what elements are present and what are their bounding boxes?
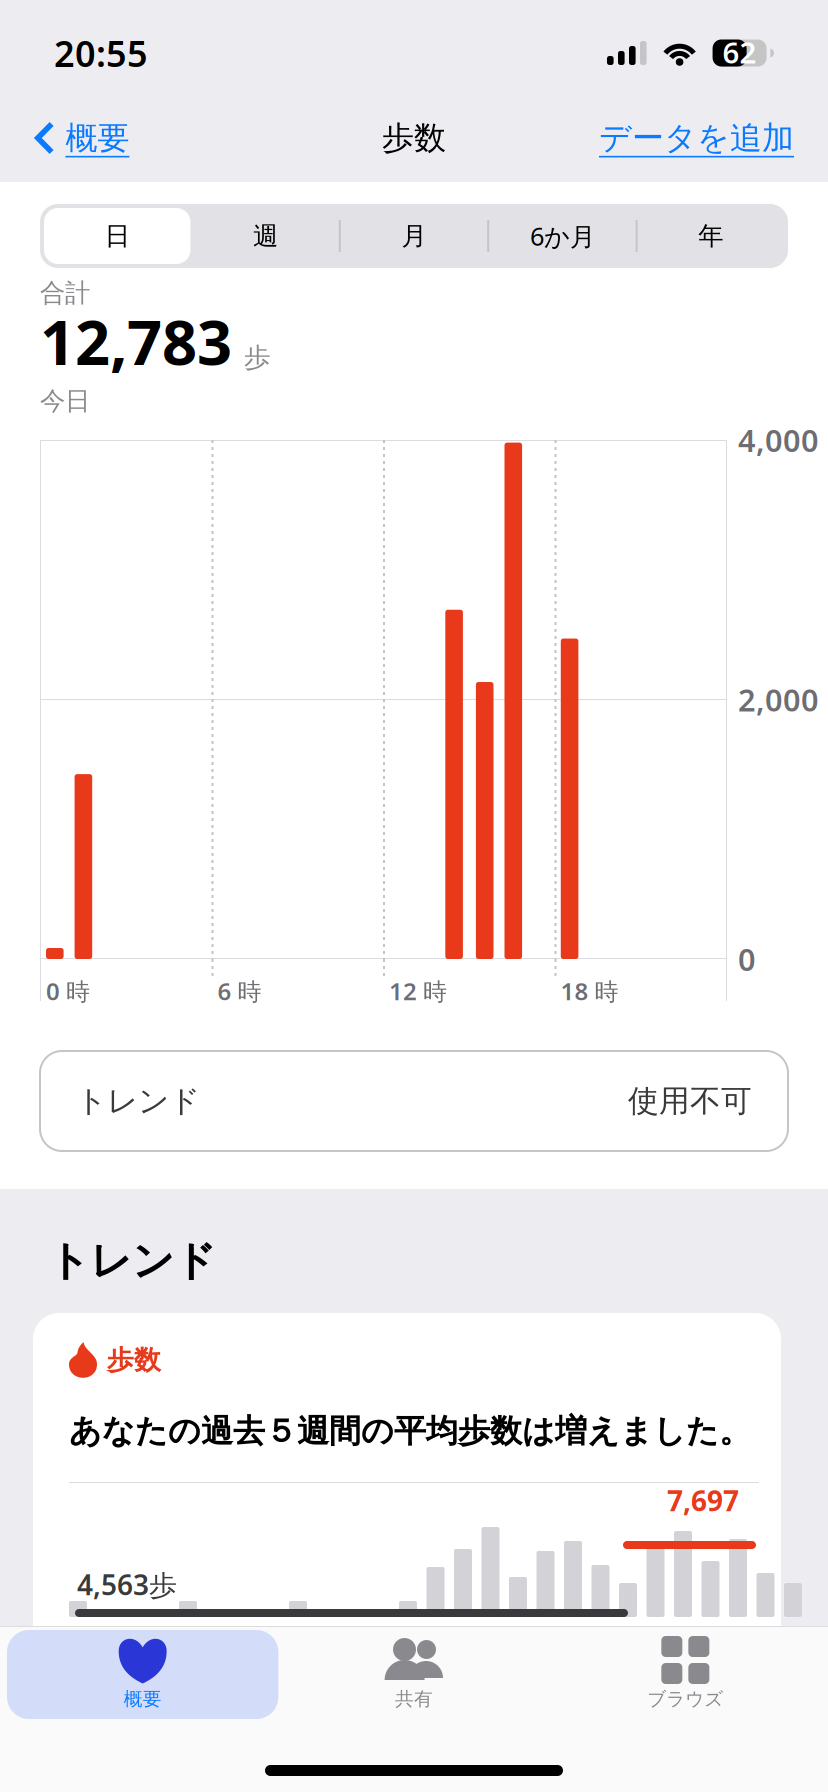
button[interactable]: ブラウズ <box>550 1630 821 1719</box>
staticText: 歩数 <box>382 118 446 158</box>
button[interactable]: 概要 <box>7 1630 278 1719</box>
staticText: 歩 <box>244 341 271 374</box>
staticText: 月 <box>401 220 426 251</box>
button[interactable]: 週 <box>192 208 339 264</box>
staticText: 20:55 <box>54 29 148 77</box>
staticText: 合計 <box>40 277 90 308</box>
button[interactable]: トレンド <box>0 1001 828 1151</box>
staticText: 18 時 <box>560 975 618 1007</box>
button[interactable]: 共有 <box>278 1630 550 1719</box>
staticText: 週 <box>253 220 278 251</box>
staticText: 12 時 <box>389 975 447 1007</box>
button[interactable]: 月 <box>341 208 487 264</box>
staticText: 使用不可 <box>628 1082 752 1120</box>
staticText: あなたの過去５週間の平均歩数は増えました。 <box>69 1411 751 1451</box>
staticText: 日 <box>105 220 130 251</box>
staticText: 共有 <box>395 1687 433 1710</box>
staticText: 概要 <box>124 1687 162 1710</box>
staticText: データを追加 <box>599 118 794 158</box>
staticText: 歩数 <box>107 1344 161 1376</box>
staticText: 12,783 <box>40 301 232 382</box>
staticText: 今日 <box>40 385 90 416</box>
staticText: 62 <box>723 32 757 71</box>
button[interactable]: データを追加 <box>583 100 810 176</box>
staticText: 概要 <box>65 118 129 158</box>
staticText: ブラウズ <box>647 1687 723 1710</box>
staticText: 7,697 <box>667 1482 739 1519</box>
button[interactable]: 6か月 <box>489 208 636 264</box>
staticText: トレンド <box>76 1082 200 1120</box>
staticText: 0 <box>738 939 756 979</box>
staticText: トレンド <box>48 1236 216 1286</box>
staticText: 4,000 <box>738 420 819 460</box>
button[interactable]: 概要 <box>18 100 145 176</box>
button[interactable]: 年 <box>638 208 784 264</box>
staticText: 2,000 <box>738 679 819 720</box>
staticText: 6か月 <box>530 219 595 253</box>
button[interactable]: 日 <box>44 208 190 264</box>
staticText: 4,563歩 <box>77 1566 177 1603</box>
staticText: 6 時 <box>217 975 261 1007</box>
staticText: 年 <box>698 220 723 251</box>
staticText: 0 時 <box>46 975 90 1007</box>
